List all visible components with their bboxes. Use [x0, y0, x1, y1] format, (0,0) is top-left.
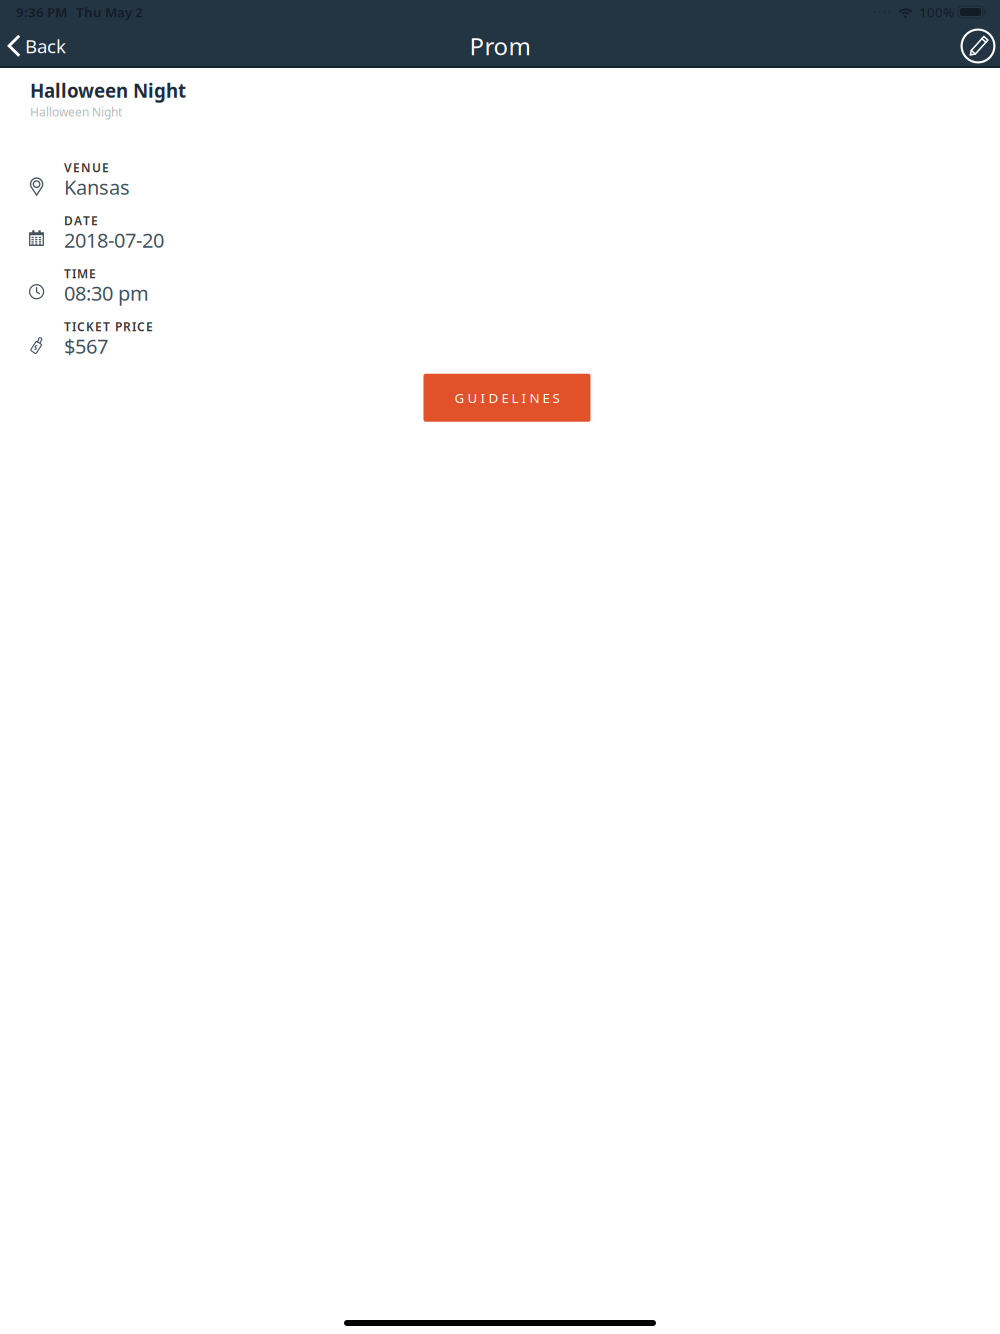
staticText: D A T E: [64, 213, 98, 229]
staticText: 9:36 PM: [16, 3, 67, 21]
staticText: T I M E: [64, 266, 96, 282]
staticText: V E N U E: [64, 160, 109, 176]
staticText: 08:30 pm: [64, 280, 149, 306]
staticText: G U I D E L I N E S: [454, 389, 559, 407]
button[interactable]: Edit: [956, 24, 1000, 68]
staticText: Thu May 2: [76, 3, 143, 21]
staticText: Back: [25, 34, 66, 58]
staticText: Kansas: [64, 174, 130, 200]
staticText: 100%: [919, 3, 954, 21]
staticText: Halloween Night: [30, 78, 186, 103]
button[interactable]: G U I D E L I N E S: [423, 374, 590, 422]
staticText: Halloween Night: [30, 104, 122, 120]
staticText: Prom: [469, 30, 530, 62]
button[interactable]: Back: [0, 24, 78, 68]
staticText: T I C K E T P R I C E: [64, 319, 153, 335]
staticText: 2018-07-20: [64, 227, 164, 253]
staticText: $567: [64, 333, 108, 359]
